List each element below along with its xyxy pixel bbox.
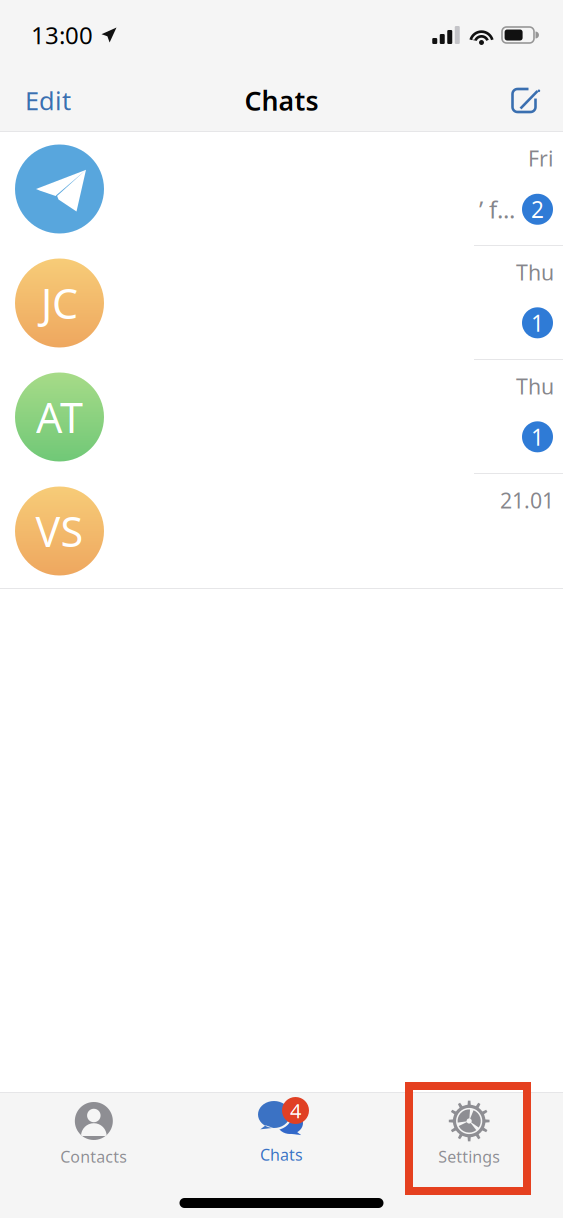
button[interactable]: JC — [0, 246, 563, 360]
button[interactable]: 4 — [188, 1095, 375, 1179]
staticText: 2 — [531, 194, 544, 224]
button[interactable]: Settings — [375, 1093, 563, 1181]
staticText: Contacts — [60, 1146, 127, 1167]
staticText: 1 — [531, 308, 544, 338]
staticText: 1 — [531, 422, 544, 452]
button[interactable]: Fri — [0, 132, 563, 246]
staticText: Settings — [438, 1146, 500, 1167]
button[interactable]: Edit — [0, 72, 87, 129]
staticText: 13:00 — [31, 19, 93, 51]
staticText: 4 — [290, 1097, 301, 1124]
staticText: Thu — [516, 372, 554, 400]
staticText: Chats — [260, 1144, 303, 1165]
staticText: JC — [41, 276, 78, 330]
button[interactable]: VS — [0, 474, 563, 588]
staticText: Fri — [528, 144, 554, 172]
staticText: 21.01 — [500, 486, 554, 514]
staticText: VS — [35, 504, 83, 558]
button[interactable]: AT — [0, 360, 563, 474]
staticText: Chats — [244, 83, 318, 118]
button[interactable]: Contacts — [0, 1093, 188, 1181]
staticText: ’ f... — [479, 193, 515, 225]
staticText: AT — [36, 390, 83, 444]
staticText: Edit — [25, 84, 71, 117]
button[interactable]: Compose — [493, 77, 563, 124]
staticText: Thu — [516, 258, 554, 286]
